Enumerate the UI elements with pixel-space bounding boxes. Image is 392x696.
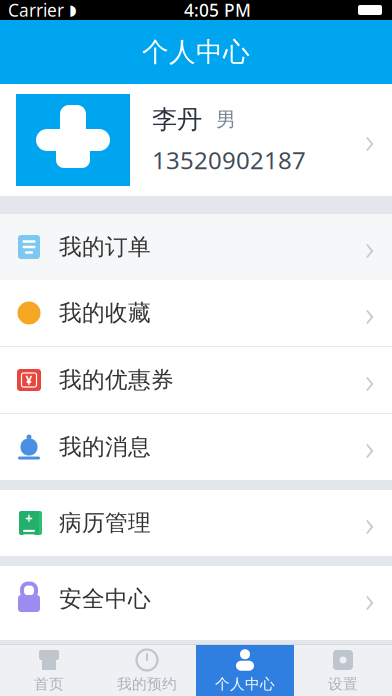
staticText: 李丹	[152, 104, 202, 135]
staticText: 设置	[328, 675, 358, 693]
button[interactable]: 我的收藏	[0, 280, 392, 346]
button[interactable]: 设置	[294, 645, 392, 696]
staticText: 13520902187	[152, 144, 306, 176]
button[interactable]: 我的消息	[0, 414, 392, 480]
staticText: ◗	[69, 2, 77, 18]
staticText: 个人中心	[142, 36, 250, 68]
button[interactable]: 安全中心	[0, 566, 392, 632]
button[interactable]: +	[0, 490, 392, 556]
staticText: ›	[365, 290, 374, 336]
staticText: 我的优惠券	[59, 366, 174, 394]
staticText: 安全中心	[59, 585, 151, 613]
staticText: 男	[216, 107, 236, 132]
button[interactable]: 我的预约	[98, 645, 196, 696]
staticText: 我的消息	[59, 433, 151, 461]
staticText: 4:05 PM	[184, 0, 251, 21]
staticText: 我的预约	[117, 675, 177, 693]
staticText: 首页	[34, 675, 64, 693]
staticText: 个人中心	[215, 675, 275, 693]
staticText: ›	[365, 117, 374, 163]
staticText: ¥	[25, 372, 32, 388]
staticText: ›	[365, 424, 374, 470]
button[interactable]: 个人中心	[196, 645, 294, 696]
staticText: 我的收藏	[59, 299, 151, 327]
button[interactable]: 李丹	[0, 84, 392, 196]
staticText: ›	[365, 357, 374, 403]
staticText: ›	[365, 224, 374, 270]
staticText: +	[25, 510, 33, 527]
staticText: 病历管理	[59, 509, 151, 537]
staticText: ›	[365, 500, 374, 546]
button[interactable]: 我的订单	[0, 214, 392, 280]
staticText: 我的订单	[59, 233, 151, 261]
button[interactable]: ¥	[0, 347, 392, 413]
button[interactable]: 首页	[0, 645, 98, 696]
staticText: Carrier	[8, 0, 64, 21]
staticText: ›	[365, 576, 374, 622]
